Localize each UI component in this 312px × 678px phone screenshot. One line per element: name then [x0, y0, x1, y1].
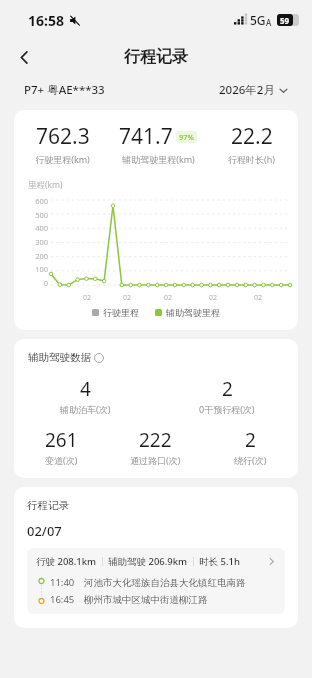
staticText: 500: [35, 210, 48, 220]
staticText: 变道(次): [45, 454, 78, 466]
staticText: 辅助驾驶里程(km): [122, 153, 195, 165]
button[interactable]: 行驶 208.1km: [27, 548, 285, 614]
staticText: 辅助泊车(次): [60, 403, 111, 415]
staticText: 0干预行程(次): [199, 403, 255, 415]
staticText: 97%: [179, 132, 194, 142]
staticText: 02/05: [83, 293, 91, 303]
staticText: 02/10: [123, 293, 131, 303]
staticText: 行程记录: [124, 47, 188, 67]
staticText: 时长 5.1h: [199, 555, 240, 568]
staticText: 柳州市城中区城中街道柳江路: [84, 594, 208, 606]
staticText: 行驶里程: [103, 307, 139, 318]
staticText: 5G: [250, 12, 266, 28]
staticText: 222: [139, 427, 172, 453]
staticText: 4: [80, 376, 91, 402]
staticText: 行驶里程(km): [35, 153, 90, 165]
staticText: 400: [35, 223, 48, 233]
staticText: 600: [35, 196, 48, 206]
staticText: 16:45: [50, 593, 75, 606]
staticText: 行驶 208.1km: [36, 555, 97, 568]
staticText: 762.3: [36, 122, 90, 151]
staticText: 741.7: [119, 122, 173, 151]
button[interactable]: 2026年2月: [219, 82, 288, 98]
staticText: 200: [35, 251, 48, 261]
staticText: 行程记录: [27, 499, 69, 512]
staticText: 02/15: [164, 293, 173, 303]
staticText: 261: [45, 427, 78, 453]
staticText: 16:58: [28, 11, 64, 30]
staticText: 辅助驾驶里程: [166, 307, 220, 318]
staticText: 2026年2月: [219, 82, 275, 98]
staticText: 绕行(次): [234, 454, 267, 466]
staticText: 辅助驾驶数据: [28, 351, 91, 364]
staticText: 02/25: [254, 293, 263, 303]
staticText: P7+ 粤AE***33: [24, 82, 105, 98]
staticText: 02/20: [209, 293, 218, 303]
staticText: 里程(km): [28, 179, 63, 191]
staticText: 2: [245, 427, 256, 453]
staticText: 59: [280, 15, 290, 26]
staticText: 22.2: [231, 122, 273, 151]
staticText: 100: [35, 264, 48, 274]
staticText: 2: [222, 376, 233, 402]
staticText: 300: [35, 237, 48, 247]
button[interactable]: Info: [94, 353, 104, 363]
staticText: 11:40: [50, 576, 75, 589]
staticText: 通过路口(次): [130, 454, 181, 466]
staticText: 0: [43, 278, 48, 288]
staticText: 辅助驾驶 206.9km: [108, 555, 188, 568]
staticText: A: [266, 17, 272, 28]
staticText: 行程时长(h): [228, 153, 275, 165]
staticText: 02/07: [27, 522, 62, 540]
staticText: 河池市大化瑶族自治县大化镇红电南路: [84, 577, 246, 589]
button[interactable]: Back: [7, 40, 41, 74]
